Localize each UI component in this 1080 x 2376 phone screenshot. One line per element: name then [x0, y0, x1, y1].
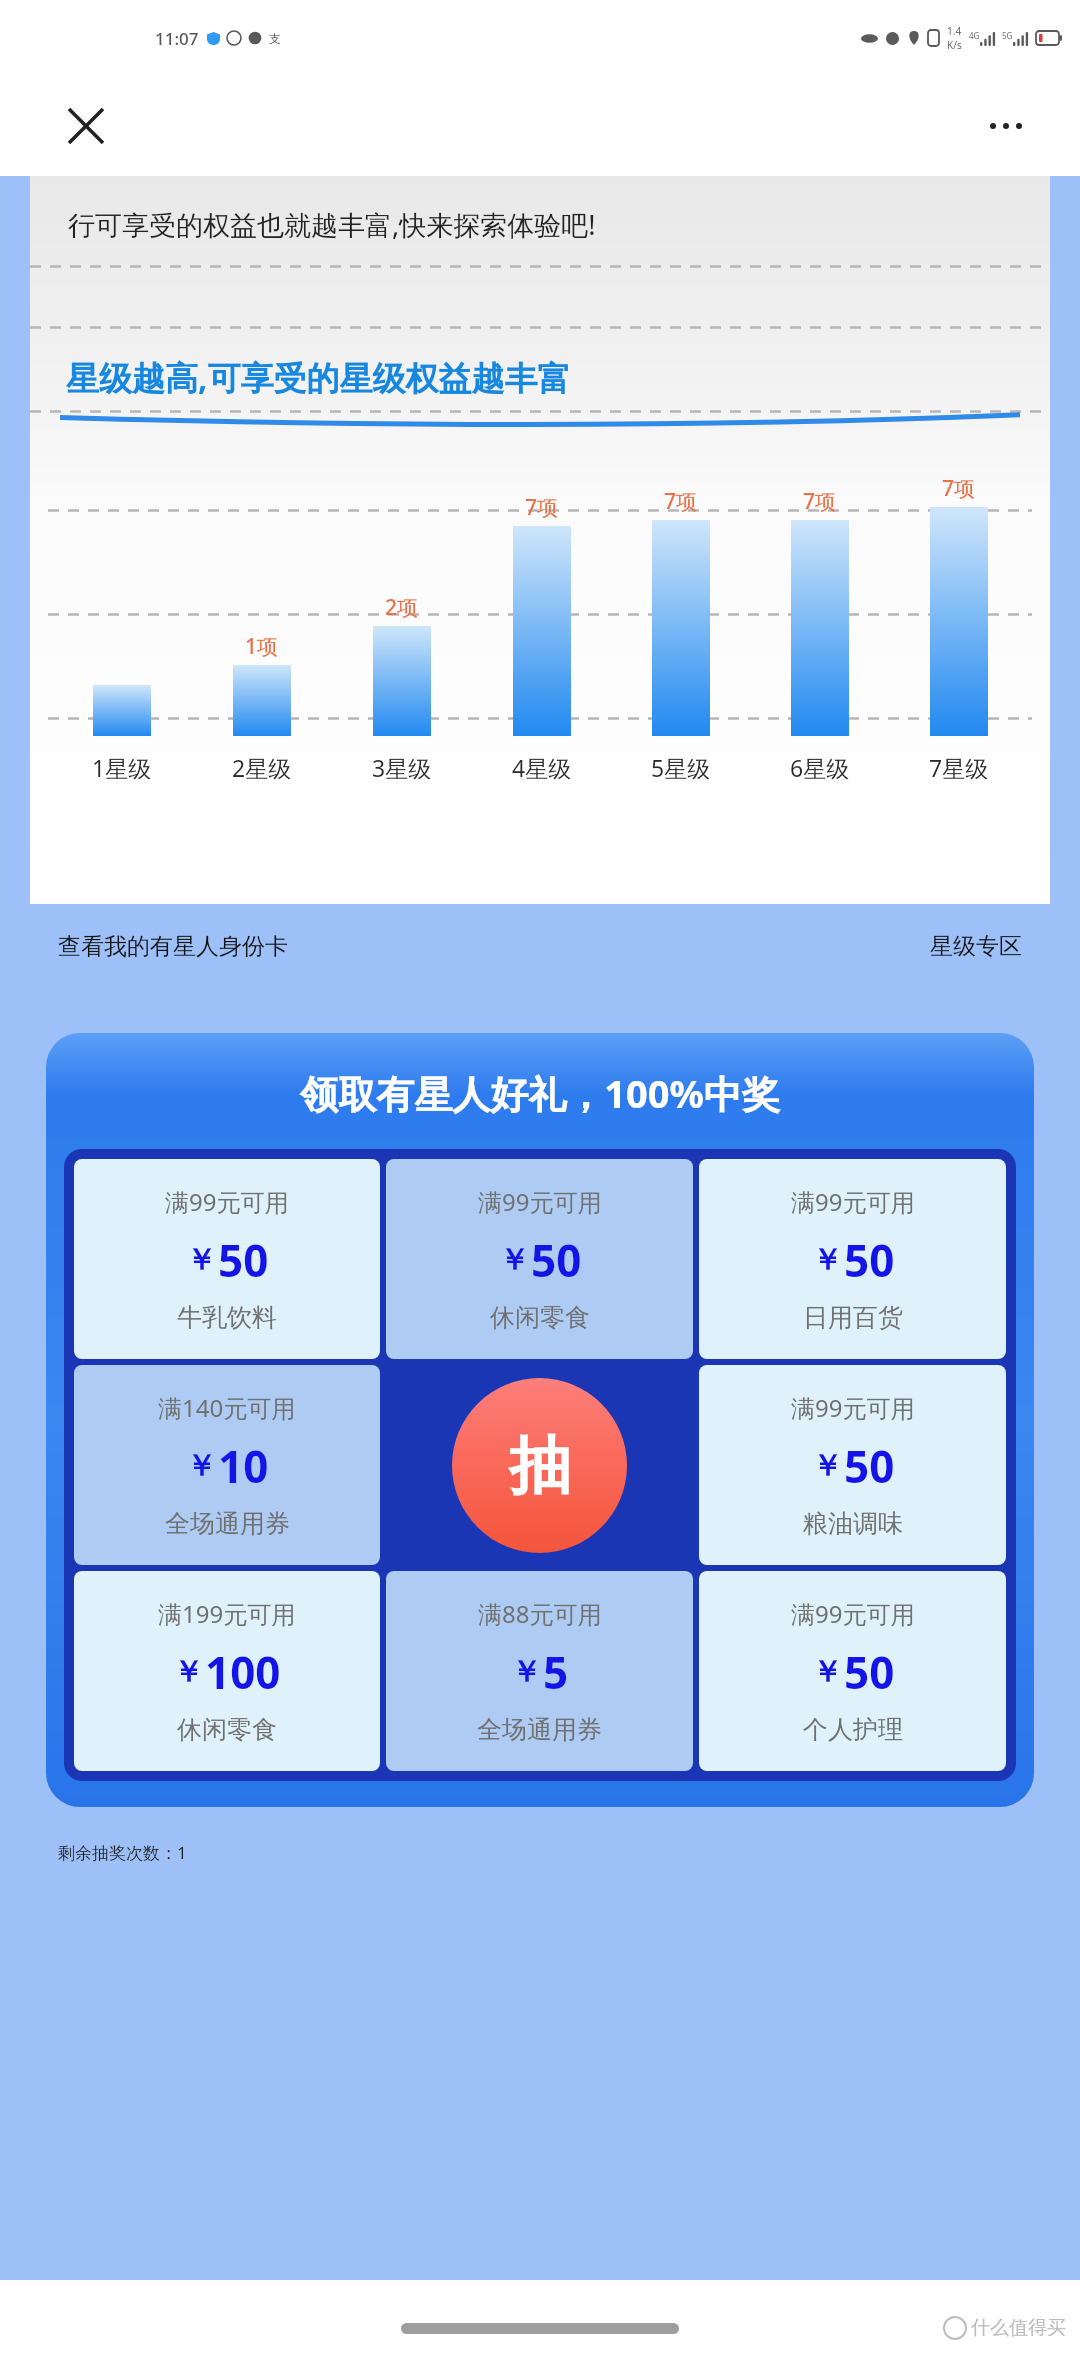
staticText: 什么值得买 — [971, 2316, 1066, 2340]
staticText: 查看我的有星人身份卡 — [58, 932, 288, 961]
staticText: 满99元可用 — [478, 1185, 602, 1218]
staticText: 7项 — [525, 493, 559, 522]
staticText: 11:07 — [155, 27, 199, 50]
staticText: ￥ — [812, 1653, 842, 1691]
staticText: 剩余抽奖次数：1 — [58, 1841, 187, 1864]
staticText: 7星级 — [929, 752, 989, 783]
staticText: 抽 — [509, 1427, 571, 1505]
button[interactable]: 满199元可用 — [74, 1571, 380, 1771]
staticText: 休闲零食 — [177, 1714, 277, 1745]
staticText: 4G — [969, 30, 980, 41]
staticText: 10 — [218, 1436, 269, 1496]
staticText: 7项 — [664, 487, 698, 516]
staticText: ￥ — [812, 1241, 842, 1279]
staticText: 5 — [543, 1642, 569, 1702]
button[interactable]: Close — [58, 98, 114, 154]
staticText: ￥ — [812, 1447, 842, 1485]
staticText: ￥ — [511, 1653, 541, 1691]
staticText: 2项 — [385, 593, 419, 622]
button[interactable]: 满99元可用 — [699, 1365, 1006, 1565]
staticText: ￥ — [173, 1653, 203, 1691]
staticText: 星级越高,可享受的星级权益越丰富 — [66, 355, 571, 400]
staticText: 牛乳饮料 — [177, 1302, 277, 1333]
staticText: 行可享受的权益也就越丰富,快来探索体验吧! — [68, 206, 596, 243]
staticText: 50 — [218, 1230, 269, 1290]
staticText: 满99元可用 — [165, 1185, 289, 1218]
button[interactable]: 满99元可用 — [74, 1159, 380, 1359]
staticText: 4星级 — [512, 752, 572, 783]
staticText: 日用百货 — [803, 1302, 903, 1333]
staticText: 全场通用券 — [477, 1714, 602, 1745]
staticText: 满99元可用 — [791, 1185, 915, 1218]
button[interactable]: 满99元可用 — [386, 1159, 693, 1359]
staticText: ￥ — [186, 1447, 216, 1485]
staticText: 7项 — [942, 474, 976, 503]
staticText: 2星级 — [232, 752, 292, 783]
staticText: ￥ — [499, 1241, 529, 1279]
button[interactable]: 抽奖 — [452, 1378, 627, 1553]
button[interactable]: More options — [978, 98, 1034, 154]
staticText: 7项 — [803, 487, 837, 516]
staticText: 星级专区 — [930, 932, 1022, 961]
staticText: 1星级 — [92, 752, 152, 783]
staticText: K/s — [947, 38, 962, 52]
staticText: ￥ — [186, 1241, 216, 1279]
button[interactable]: 满99元可用 — [699, 1159, 1006, 1359]
staticText: 6星级 — [790, 752, 850, 783]
staticText: 休闲零食 — [490, 1302, 590, 1333]
button[interactable]: 星级专区 — [930, 932, 1022, 961]
staticText: 1.4 — [947, 24, 962, 38]
staticText: 3星级 — [372, 752, 432, 783]
button[interactable]: 满140元可用 — [74, 1365, 380, 1565]
staticText: 50 — [844, 1230, 895, 1290]
staticText: 5星级 — [651, 752, 711, 783]
staticText: 100 — [205, 1642, 281, 1702]
staticText: 领取有星人好礼，100%中奖 — [300, 1067, 780, 1119]
button[interactable]: 查看我的有星人身份卡 — [58, 932, 288, 961]
staticText: 满99元可用 — [791, 1597, 915, 1630]
staticText: 粮油调味 — [803, 1508, 903, 1539]
staticText: 50 — [844, 1436, 895, 1496]
staticText: 个人护理 — [803, 1714, 903, 1745]
staticText: 全场通用券 — [165, 1508, 290, 1539]
staticText: 满140元可用 — [158, 1391, 296, 1424]
staticText: 1项 — [245, 632, 279, 661]
staticText: 满199元可用 — [158, 1597, 296, 1630]
staticText: 满99元可用 — [791, 1391, 915, 1424]
button[interactable]: 满99元可用 — [699, 1571, 1006, 1771]
staticText: 5G — [1002, 30, 1013, 41]
staticText: 支 — [269, 31, 281, 46]
staticText: 50 — [531, 1230, 582, 1290]
button[interactable]: 满88元可用 — [386, 1571, 693, 1771]
staticText: 50 — [844, 1642, 895, 1702]
staticText: 满88元可用 — [478, 1597, 602, 1630]
